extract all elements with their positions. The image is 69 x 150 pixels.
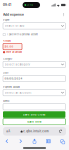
button[interactable]: Back <box>0 138 14 144</box>
button[interactable]: More options <box>61 12 66 17</box>
button[interactable]: Forward <box>14 138 28 144</box>
staticText: Save new <box>27 120 41 123</box>
button[interactable]: Reload <box>57 128 64 135</box>
button[interactable]: $0.00 <box>3 43 22 50</box>
staticText: Date <box>3 71 8 74</box>
button[interactable]: I paid with a personal account <box>3 33 65 36</box>
button[interactable] <box>3 104 65 110</box>
staticText: $0.00 <box>5 45 14 48</box>
button[interactable]: Save and close <box>3 111 65 118</box>
staticText: c.qbo.intuit.com <box>23 130 48 133</box>
button[interactable]: Share <box>28 138 41 144</box>
button[interactable]: Select an account <box>3 89 65 96</box>
button[interactable]: 09/05/2024 <box>3 75 65 82</box>
staticText: Memo <box>3 100 9 103</box>
staticText: Select a category <box>5 63 30 66</box>
staticText: Search or add <box>5 24 25 27</box>
button[interactable]: Tabs <box>55 138 69 144</box>
staticText: Add expense <box>3 13 24 17</box>
staticText: Enter an amount <box>6 51 22 53</box>
staticText: Amount <box>3 39 11 42</box>
staticText: 2:14 <box>27 3 33 7</box>
staticText: Payee <box>3 19 9 22</box>
button[interactable]: Select a category <box>3 61 65 68</box>
staticText: 09/05/2024 <box>5 77 23 80</box>
staticText: Payment account <box>3 86 20 88</box>
staticText: 09:41 <box>3 3 11 7</box>
button[interactable]: Bookmarks <box>41 138 55 144</box>
staticText: Save and close <box>23 113 46 116</box>
staticText: aA <box>6 130 10 133</box>
button[interactable]: Page settings <box>5 128 12 135</box>
staticText: Category <box>3 57 12 60</box>
button[interactable]: Search or add <box>3 23 65 29</box>
staticText: I paid with a personal account <box>7 33 38 36</box>
staticText: Select an account <box>5 91 32 94</box>
button[interactable]: Save new <box>3 118 65 125</box>
